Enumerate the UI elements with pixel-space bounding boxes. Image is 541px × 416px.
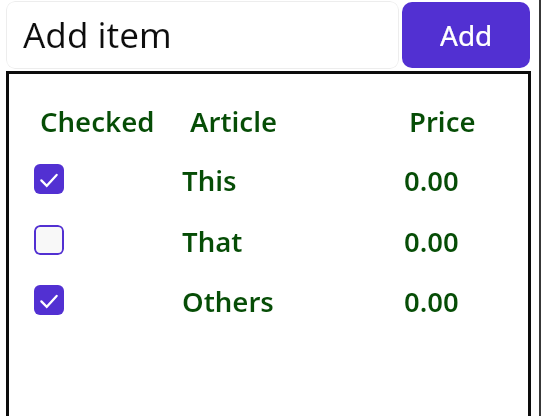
- button[interactable]: This, checked: [34, 164, 64, 194]
- button[interactable]: Add item text field: [6, 1, 399, 69]
- button[interactable]: Others, checked: [6, 268, 531, 328]
- button[interactable]: That, not checked: [34, 225, 64, 255]
- staticText: Price: [409, 103, 476, 133]
- staticText: Others: [182, 283, 274, 313]
- button[interactable]: That, not checked: [6, 208, 531, 268]
- staticText: Article: [190, 103, 278, 133]
- staticText: Add item: [23, 11, 172, 59]
- staticText: Checked: [40, 103, 155, 133]
- staticText: 0.00: [404, 283, 459, 313]
- staticText: This: [182, 162, 237, 192]
- staticText: Add: [440, 16, 493, 54]
- button[interactable]: Others, checked: [34, 285, 64, 315]
- staticText: 0.00: [404, 223, 459, 253]
- staticText: 0.00: [404, 162, 459, 192]
- button[interactable]: Add: [402, 2, 530, 68]
- button[interactable]: This, checked: [6, 147, 531, 207]
- staticText: That: [182, 223, 243, 253]
